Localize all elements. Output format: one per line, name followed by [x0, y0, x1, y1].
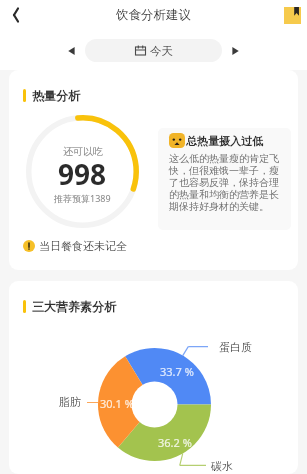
button[interactable]: Back — [4, 3, 28, 27]
staticText: 还可以吃 — [63, 145, 103, 158]
button[interactable]: Previous day — [61, 40, 83, 62]
staticText: 今天 — [150, 44, 173, 58]
staticText: 30.1 % — [100, 396, 134, 411]
staticText: 推荐预算1389 — [54, 192, 111, 204]
button[interactable]: Next day — [224, 40, 246, 62]
staticText: 总热量摄入过低 — [186, 134, 263, 148]
button[interactable]: 今天 — [85, 39, 222, 62]
staticText: 33.7 % — [160, 364, 194, 379]
staticText: 碳水 — [211, 459, 233, 473]
staticText: 当日餐食还未记全 — [39, 239, 127, 253]
button[interactable]: Bookmark — [284, 7, 301, 24]
staticText: 这么低的热量瘦的肯定飞快，但很难饿一辈子，瘦了也容易反弹，保持合理的热量和均衡的… — [169, 152, 283, 213]
staticText: 蛋白质 — [219, 340, 252, 354]
staticText: 三大营养素分析 — [32, 299, 116, 314]
staticText: 998 — [58, 155, 107, 193]
staticText: 饮食分析建议 — [116, 7, 191, 23]
staticText: 脂肪 — [59, 395, 81, 409]
staticText: 热量分析 — [32, 88, 80, 103]
staticText: 36.2 % — [158, 435, 192, 450]
